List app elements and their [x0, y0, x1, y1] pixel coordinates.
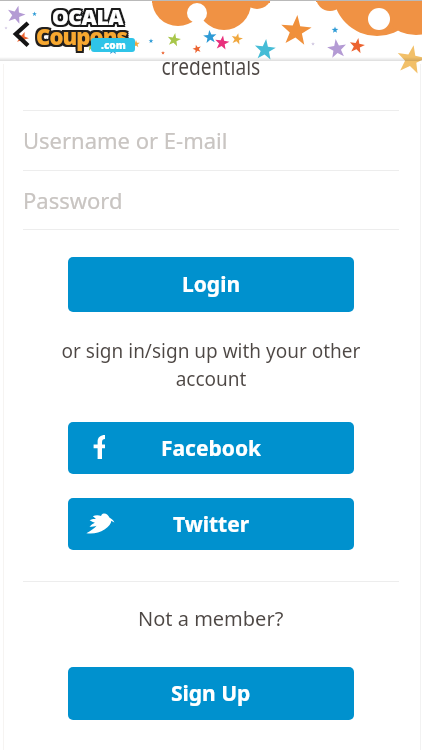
staticText: Facebook [161, 434, 262, 463]
staticText: Password [23, 185, 123, 215]
staticText: Coupons [34, 21, 126, 51]
staticText: OCALA [52, 1, 124, 30]
staticText: OCALA [52, 5, 124, 34]
staticText: Coupons [38, 21, 130, 51]
staticText: OCALA [52, 3, 124, 32]
staticText: or sign in/sign up with your other accou… [55, 338, 367, 392]
staticText: Username or E-mail [23, 125, 228, 155]
staticText: credentials [161, 49, 261, 82]
button[interactable]: Password [0, 170, 422, 229]
button[interactable]: Back [8, 16, 34, 50]
staticText: Coupons [36, 23, 128, 53]
staticText: OCALA [50, 3, 122, 32]
staticText: OCALA [50, 5, 122, 34]
staticText: Coupons [38, 19, 130, 49]
staticText: Coupons [34, 23, 126, 53]
button[interactable]: Username or E-mail [0, 110, 422, 170]
button[interactable]: Twitter [68, 498, 354, 550]
staticText: OCALA [54, 3, 126, 32]
staticText: Coupons [36, 19, 128, 49]
staticText: Twitter [173, 510, 250, 539]
staticText: Not a member? [138, 605, 284, 632]
staticText: OCALA [54, 1, 126, 30]
staticText: OCALA [54, 5, 126, 34]
button[interactable]: Sign Up [68, 667, 354, 720]
staticText: Login [182, 270, 241, 299]
staticText: Coupons [38, 23, 130, 53]
staticText: OCALA [50, 1, 122, 30]
button[interactable]: Facebook [68, 422, 354, 474]
staticText: Coupons [36, 21, 128, 51]
staticText: .com [101, 38, 126, 52]
button[interactable]: Login [68, 257, 354, 312]
staticText: Sign Up [171, 679, 251, 708]
staticText: Coupons [34, 19, 126, 49]
